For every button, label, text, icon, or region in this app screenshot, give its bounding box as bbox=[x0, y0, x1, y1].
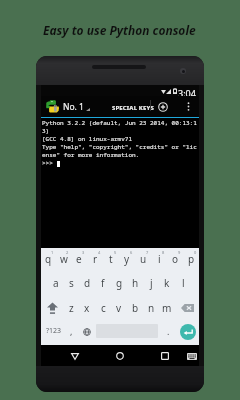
staticText: Python 3.2.2 (default, Jun 23 2014, 00:1… bbox=[42, 119, 197, 127]
button[interactable]: v bbox=[111, 296, 127, 320]
button[interactable]: y bbox=[119, 248, 135, 270]
staticText: u bbox=[140, 252, 147, 266]
staticText: p bbox=[188, 252, 195, 266]
button[interactable]: q bbox=[41, 248, 56, 270]
staticText: h bbox=[132, 276, 139, 290]
button[interactable]: f bbox=[95, 270, 111, 296]
staticText: 3 bbox=[82, 250, 85, 255]
staticText: i bbox=[158, 252, 161, 266]
staticText: [GCC 4.8] on linux-armv7l bbox=[42, 135, 133, 143]
staticText: l bbox=[182, 276, 185, 290]
staticText: q bbox=[45, 252, 52, 266]
button[interactable]: d bbox=[79, 270, 95, 296]
staticText: 0 bbox=[194, 250, 197, 255]
button[interactable]: j bbox=[143, 270, 159, 296]
staticText: o bbox=[172, 252, 179, 266]
button[interactable]: Backspace bbox=[175, 296, 199, 320]
button[interactable]: l bbox=[175, 270, 191, 296]
staticText: 4 bbox=[98, 250, 101, 255]
button[interactable]: More options bbox=[178, 96, 198, 117]
staticText: ense" for more information. bbox=[42, 151, 140, 159]
staticText: f bbox=[101, 276, 105, 290]
button[interactable]: Switch keyboard bbox=[182, 346, 202, 366]
staticText: m bbox=[162, 301, 172, 315]
button[interactable]: , bbox=[66, 320, 77, 345]
staticText: 3) bbox=[42, 127, 50, 135]
staticText: 3:04 bbox=[178, 87, 196, 98]
staticText: k bbox=[164, 276, 170, 290]
button[interactable]: k bbox=[159, 270, 175, 296]
staticText: . bbox=[167, 325, 170, 337]
staticText: x bbox=[84, 301, 90, 315]
staticText: SPECIAL KEYS bbox=[112, 104, 154, 112]
staticText: e bbox=[76, 252, 82, 266]
button[interactable]: o bbox=[167, 248, 183, 270]
button[interactable]: w bbox=[56, 248, 71, 270]
staticText: y bbox=[124, 252, 130, 266]
staticText: c bbox=[101, 301, 106, 315]
button[interactable]: g bbox=[111, 270, 127, 296]
staticText: b bbox=[132, 301, 139, 315]
staticText: 7 bbox=[146, 250, 149, 255]
button[interactable]: Enter bbox=[173, 320, 199, 345]
button[interactable]: No. 1 bbox=[46, 96, 90, 117]
staticText: ?123 bbox=[46, 326, 62, 336]
button[interactable]: Recents bbox=[155, 346, 175, 366]
staticText: No. 1 bbox=[63, 101, 84, 113]
staticText: 1 bbox=[51, 250, 54, 255]
staticText: r bbox=[93, 252, 98, 266]
staticText: 6 bbox=[130, 250, 133, 255]
button[interactable]: b bbox=[127, 296, 143, 320]
button[interactable]: r bbox=[87, 248, 103, 270]
button[interactable]: i bbox=[151, 248, 167, 270]
button[interactable]: Change language bbox=[77, 320, 96, 345]
staticText: 2 bbox=[66, 250, 69, 255]
button[interactable]: ?123 bbox=[41, 320, 66, 345]
staticText: g bbox=[116, 276, 123, 290]
staticText: n bbox=[148, 301, 155, 315]
staticText: d bbox=[84, 276, 91, 290]
button[interactable]: Back bbox=[65, 346, 85, 366]
button[interactable]: u bbox=[135, 248, 151, 270]
button[interactable]: h bbox=[127, 270, 143, 296]
staticText: a bbox=[53, 276, 59, 290]
button[interactable]: c bbox=[95, 296, 111, 320]
button[interactable]: m bbox=[159, 296, 175, 320]
staticText: 9 bbox=[178, 250, 181, 255]
staticText: v bbox=[116, 301, 122, 315]
button[interactable]: Shift bbox=[41, 296, 64, 320]
button[interactable]: z bbox=[64, 296, 79, 320]
button[interactable]: SPECIAL KEYS bbox=[112, 97, 154, 118]
staticText: s bbox=[69, 276, 74, 290]
staticText: Type "help", "copyright", "credits" or "… bbox=[42, 143, 197, 151]
button[interactable]: x bbox=[79, 296, 95, 320]
staticText: j bbox=[150, 276, 153, 290]
button[interactable]: t bbox=[103, 248, 119, 270]
staticText: Easy to use Python console bbox=[43, 22, 196, 38]
button[interactable]: Add bbox=[153, 96, 173, 117]
staticText: w bbox=[60, 252, 68, 266]
staticText: t bbox=[109, 252, 113, 266]
button[interactable]: e bbox=[71, 248, 87, 270]
button[interactable]: p bbox=[183, 248, 199, 270]
button[interactable]: a bbox=[48, 270, 63, 296]
staticText: >>> bbox=[42, 159, 57, 167]
button[interactable]: Home bbox=[110, 346, 130, 366]
staticText: , bbox=[70, 325, 73, 337]
staticText: 8 bbox=[162, 250, 165, 255]
button[interactable]: . bbox=[158, 320, 173, 345]
staticText: z bbox=[69, 301, 74, 315]
staticText: 5 bbox=[114, 250, 117, 255]
button[interactable]: s bbox=[63, 270, 79, 296]
button[interactable]: n bbox=[143, 296, 159, 320]
